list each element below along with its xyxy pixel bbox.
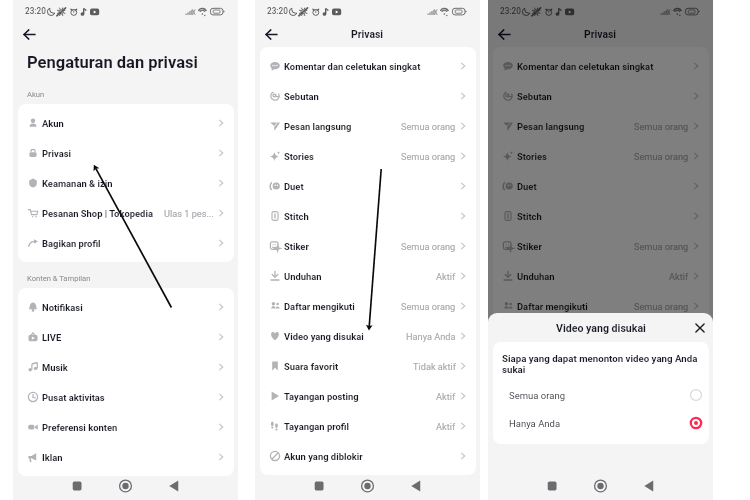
staticText: Duet (517, 181, 692, 192)
button[interactable]: Pesan langsung (493, 111, 709, 141)
staticText: Suara favorit (517, 361, 646, 372)
button[interactable]: Pesan langsung (260, 111, 476, 141)
staticText: Privasi (584, 28, 617, 40)
staticText: Komentar dan celetukan singkat (517, 61, 692, 72)
staticText: Akun (42, 118, 217, 129)
button[interactable]: Sebutan (493, 81, 709, 111)
staticText: Notifikasi (42, 302, 217, 313)
button[interactable]: Komentar dan celetukan singkat (260, 51, 476, 81)
staticText: Siapa yang dapat menonton video yang And… (502, 353, 702, 376)
button[interactable]: Stories (260, 141, 476, 171)
staticText: 23:20 (25, 6, 46, 16)
staticText: Semua orang (634, 301, 689, 312)
staticText: Pusat aktivitas (42, 392, 217, 403)
button[interactable]: Notifikasi (18, 292, 234, 322)
button[interactable]: Hanya Anda (502, 409, 702, 437)
staticText: Daftar mengikuti (517, 301, 634, 312)
button[interactable]: Daftar mengikuti (493, 291, 709, 321)
button[interactable]: Akun yang diblokir (493, 441, 709, 471)
button[interactable]: Akun (18, 108, 234, 138)
button[interactable]: Daftar mengikuti (260, 291, 476, 321)
staticText: Unduhan (284, 271, 436, 282)
staticText: Pesan langsung (284, 121, 401, 132)
button[interactable]: Tayangan profil (260, 411, 476, 441)
button[interactable]: Back (260, 23, 282, 45)
staticText: Bagikan profil (42, 238, 217, 249)
staticText: Stitch (284, 211, 459, 222)
staticText: Unduhan (517, 271, 669, 282)
button[interactable]: Iklan (18, 442, 234, 472)
staticText: Tidak aktif (413, 361, 456, 372)
button[interactable]: Tayangan posting (260, 381, 476, 411)
button[interactable]: Duet (493, 171, 709, 201)
staticText: Iklan (42, 452, 217, 463)
staticText: Preferensi konten (42, 422, 217, 433)
button[interactable]: Duet (260, 171, 476, 201)
staticText: Aktif (436, 421, 456, 432)
button[interactable]: LIVE (18, 322, 234, 352)
button[interactable]: Privasi (18, 138, 234, 168)
staticText: Tidak aktif (646, 361, 689, 372)
button[interactable]: Unduhan (493, 261, 709, 291)
staticText: Semua orang (634, 121, 689, 132)
staticText: LIVE (42, 332, 217, 343)
button[interactable]: Suara favorit (260, 351, 476, 381)
staticText: Akun yang diblokir (284, 451, 459, 462)
staticText: Stitch (517, 211, 692, 222)
button[interactable]: Preferensi konten (18, 412, 234, 442)
staticText: Tayangan profil (284, 421, 436, 432)
staticText: Akun (27, 90, 45, 99)
staticText: Video yang disukai (556, 322, 646, 334)
staticText: Video yang disukai (517, 331, 639, 342)
button[interactable]: Back (493, 23, 515, 45)
button[interactable]: Stories (493, 141, 709, 171)
button[interactable]: Video yang disukai (493, 321, 709, 351)
button[interactable]: Sebutan (260, 81, 476, 111)
button[interactable]: Musik (18, 352, 234, 382)
button[interactable]: Video yang disukai (260, 321, 476, 351)
staticText: Aktif (436, 391, 456, 402)
staticText: Stiker (517, 241, 634, 252)
button[interactable]: Stitch (493, 201, 709, 231)
staticText: Video yang disukai (284, 331, 406, 342)
button[interactable]: Komentar dan celetukan singkat (493, 51, 709, 81)
button[interactable]: Back (18, 23, 40, 45)
button[interactable]: Akun yang diblokir (260, 441, 476, 471)
staticText: Konten & Tampilan (27, 274, 91, 283)
staticText: Suara favorit (284, 361, 413, 372)
button[interactable]: Unduhan (260, 261, 476, 291)
button[interactable]: Pusat aktivitas (18, 382, 234, 412)
button[interactable]: Close (692, 320, 708, 336)
staticText: Stiker (284, 241, 401, 252)
staticText: Stories (284, 151, 401, 162)
staticText: Hanya Anda (639, 331, 689, 342)
staticText: Semua orang (401, 301, 456, 312)
button[interactable]: Tayangan posting (493, 381, 709, 411)
staticText: 23:20 (500, 6, 521, 16)
staticText: Sebutan (284, 91, 459, 102)
button[interactable]: Keamanan & izin (18, 168, 234, 198)
button[interactable]: Bagikan profil (18, 228, 234, 258)
staticText: Ulas 1 pes... (164, 208, 214, 219)
staticText: Hanya Anda (406, 331, 456, 342)
staticText: Tayangan profil (517, 421, 669, 432)
button[interactable]: Stiker (493, 231, 709, 261)
button[interactable]: Pesanan Shop | Tokopedia (18, 198, 234, 228)
staticText: Semua orang (509, 390, 565, 401)
button[interactable]: Suara favorit (493, 351, 709, 381)
staticText: Semua orang (401, 241, 456, 252)
staticText: Komentar dan celetukan singkat (284, 61, 459, 72)
staticText: Aktif (669, 271, 689, 282)
button[interactable]: Stiker (260, 231, 476, 261)
button[interactable]: Stitch (260, 201, 476, 231)
staticText: Pengaturan dan privasi (27, 53, 198, 72)
staticText: Stories (517, 151, 634, 162)
staticText: Daftar mengikuti (284, 301, 401, 312)
button[interactable]: Tayangan profil (493, 411, 709, 441)
staticText: Semua orang (401, 151, 456, 162)
button[interactable]: Semua orang (502, 381, 702, 409)
staticText: Privasi (351, 28, 384, 40)
staticText: Semua orang (401, 121, 456, 132)
